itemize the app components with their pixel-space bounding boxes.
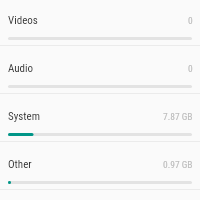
button[interactable]: Audio <box>0 46 200 94</box>
button[interactable]: System <box>0 94 200 142</box>
button[interactable]: Videos <box>0 0 200 46</box>
staticText: 0.97 GB <box>163 159 193 170</box>
staticText: 0 <box>188 63 193 74</box>
staticText: Videos <box>8 14 38 27</box>
button[interactable]: Other <box>0 142 200 190</box>
staticText: 0 <box>188 15 193 26</box>
staticText: 7.87 GB <box>163 111 193 122</box>
staticText: System <box>8 110 40 123</box>
staticText: Audio <box>8 62 34 75</box>
staticText: Other <box>8 158 32 171</box>
